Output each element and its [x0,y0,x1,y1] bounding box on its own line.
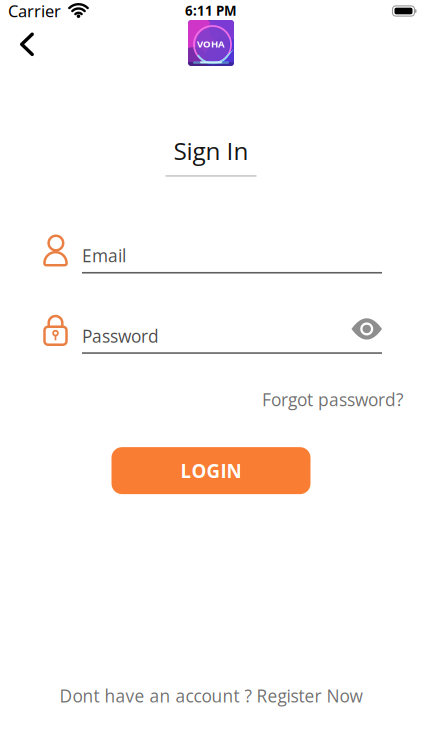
button[interactable]: LOGIN [111,447,310,494]
button[interactable]: Back [0,24,42,66]
staticText: Carrier [8,0,61,22]
staticText: 6:11 PM [185,1,237,20]
staticText: Sign In [173,134,248,167]
button[interactable]: Show password [351,325,382,347]
staticText: Email [82,244,126,267]
button[interactable]: Dont have an account ? Register Now [59,684,362,707]
staticText: VOHA [197,37,225,50]
staticText: Dont have an account ? Register Now [59,684,362,707]
button[interactable]: Forgot password? [262,388,403,411]
staticText: Forgot password? [262,388,403,411]
staticText: LOGIN [180,458,241,483]
staticText: Password [82,324,159,348]
